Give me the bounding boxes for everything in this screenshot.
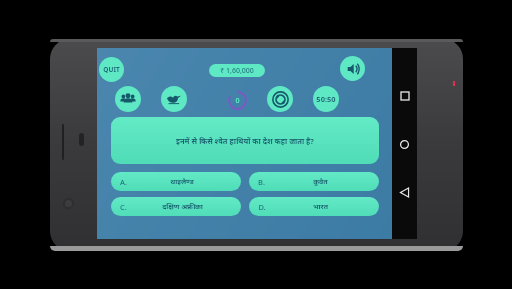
button[interactable]: C. (111, 197, 241, 216)
staticText: C. (120, 202, 127, 212)
button[interactable]: Audience poll (115, 86, 141, 112)
button[interactable]: 50:50 (313, 86, 339, 112)
button[interactable]: Phone a friend (161, 86, 187, 112)
button[interactable]: A. (111, 172, 241, 191)
staticText: कुवैत (313, 177, 328, 187)
staticText: D. (258, 202, 266, 212)
staticText: थाइलैण्ड (170, 177, 194, 187)
staticText: दक्षिण अफ्रीका (162, 202, 203, 212)
button[interactable]: Recent apps (392, 83, 417, 109)
button[interactable]: QUIT (99, 57, 124, 82)
button[interactable]: D. (249, 197, 379, 216)
staticText: भारत (313, 202, 328, 212)
staticText: A. (120, 177, 127, 187)
staticText: इनमें से किसे श्वेत हाथियों का देश कहा ज… (176, 136, 314, 146)
button[interactable]: Back (392, 179, 417, 205)
button[interactable]: Home (392, 131, 417, 157)
button[interactable]: Change question (267, 86, 293, 112)
staticText: QUIT (103, 65, 120, 74)
staticText: 50:50 (316, 94, 336, 104)
staticText: 0 (235, 96, 240, 106)
button[interactable]: B. (249, 172, 379, 191)
staticText: ₹ 1,60,000 (220, 66, 254, 76)
button[interactable]: Sound (340, 56, 365, 81)
staticText: B. (258, 177, 265, 187)
